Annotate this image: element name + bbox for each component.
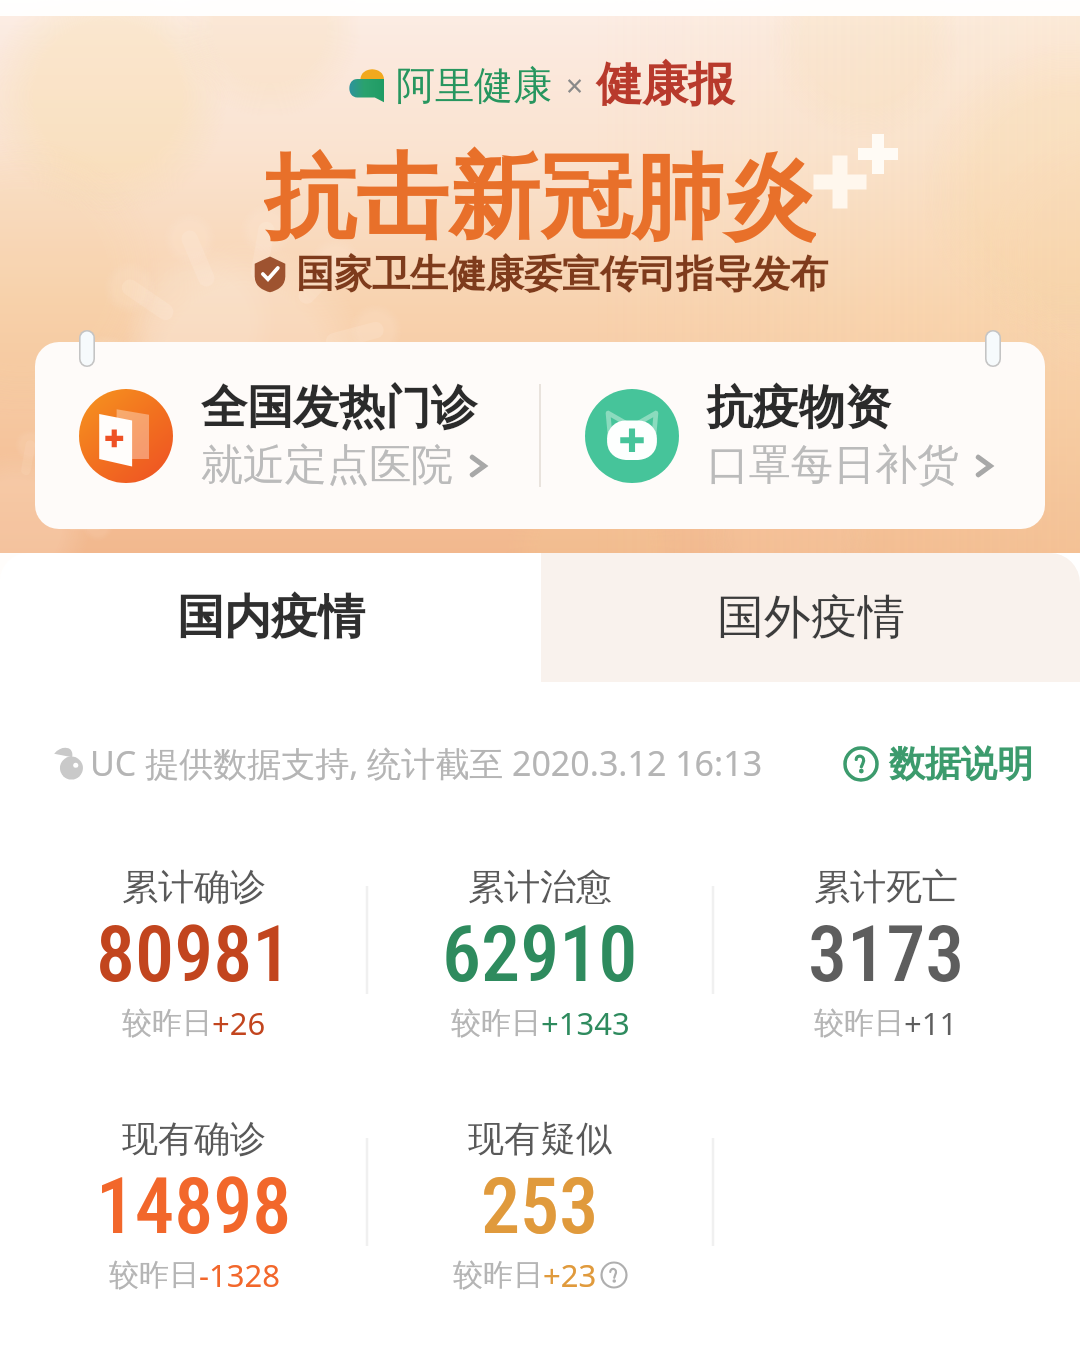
staticText: 累计死亡	[814, 864, 958, 909]
button[interactable]: 现有疑似	[367, 1116, 713, 1296]
staticText: 较昨日	[451, 1004, 541, 1042]
staticText: 国外疫情	[717, 588, 905, 647]
staticText: +1343	[541, 1002, 630, 1044]
staticText: 就近定点医院	[201, 439, 453, 492]
staticText: 数据说明	[889, 741, 1033, 786]
staticText: 累计治愈	[468, 864, 612, 909]
staticText: 较昨日	[109, 1256, 199, 1294]
staticText: 阿里健康	[396, 61, 552, 110]
staticText: -1328	[199, 1254, 280, 1296]
button[interactable]: 累计确诊	[21, 864, 367, 1044]
staticText: +26	[212, 1002, 266, 1044]
staticText: 健康报	[596, 56, 734, 114]
staticText: 较昨日	[814, 1004, 904, 1042]
other: Help	[600, 1261, 628, 1289]
staticText: UC 提供数据支持, 统计截至 2020.3.12 16:13	[90, 740, 763, 786]
staticText: 现有确诊	[122, 1116, 266, 1161]
staticText: 口罩每日补货	[707, 439, 959, 492]
staticText: 3173	[808, 909, 965, 1000]
staticText: 现有疑似	[468, 1116, 612, 1161]
staticText: 国家卫生健康委宣传司指导发布	[296, 250, 828, 298]
button[interactable]: 累计死亡	[713, 864, 1059, 1044]
staticText: 国内疫情	[177, 588, 365, 647]
button[interactable]: 抗疫物资	[541, 342, 1045, 529]
staticText: 抗击新冠肺炎	[264, 140, 816, 244]
staticText: 较昨日	[122, 1004, 212, 1042]
staticText: 62910	[442, 909, 638, 1000]
button[interactable]: 全国发热门诊	[35, 342, 539, 529]
staticText: 较昨日	[453, 1256, 543, 1294]
button[interactable]: 现有确诊	[21, 1116, 367, 1296]
staticText: +23	[543, 1254, 597, 1296]
staticText: +11	[904, 1002, 958, 1044]
staticText: 抗疫物资	[707, 379, 891, 437]
button[interactable]: 数据说明	[843, 741, 1033, 786]
staticText: 253	[481, 1161, 599, 1252]
button[interactable]: 累计治愈	[367, 864, 713, 1044]
staticText: 累计确诊	[122, 864, 266, 909]
button[interactable]: 国内疫情	[0, 553, 541, 682]
staticText: 全国发热门诊	[201, 379, 477, 437]
staticText: ×	[566, 65, 584, 106]
button[interactable]: 国外疫情	[541, 553, 1080, 682]
other: 全国发热门诊	[79, 389, 173, 483]
staticText: 14898	[96, 1161, 292, 1252]
staticText: 80981	[96, 909, 292, 1000]
other: 抗疫物资	[585, 389, 679, 483]
